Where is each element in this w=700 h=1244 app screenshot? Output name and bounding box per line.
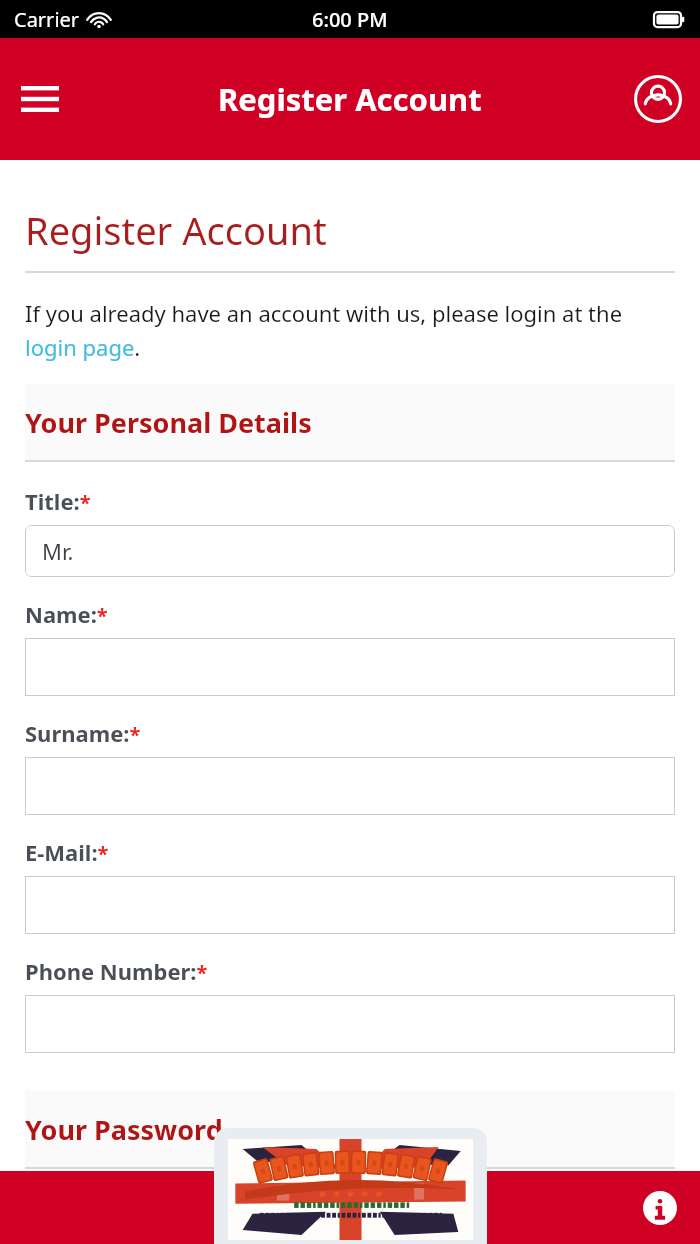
button[interactable]: Account [630,71,686,127]
staticText: Name:* [25,599,108,629]
button[interactable] [25,757,675,815]
button[interactable]: Mr. [25,525,675,577]
staticText: Register Account [218,78,482,120]
staticText: Mr. [42,536,74,566]
staticText: Title:* [25,486,91,516]
staticText: Carrier [14,6,80,33]
staticText: E-Mail:* [25,837,109,867]
button[interactable]: Menu [14,73,66,125]
button[interactable] [214,1128,487,1244]
staticText: Your Personal Details [25,404,312,441]
button[interactable] [25,995,675,1053]
button[interactable] [25,638,675,696]
button[interactable]: Information [638,1186,682,1230]
staticText: Your Password [25,1111,223,1148]
staticText: Surname:* [25,718,141,748]
staticText: 6:00 PM [312,6,388,33]
staticText: If you already have an account with us, … [25,298,675,362]
staticText: Phone Number:* [25,956,208,986]
button[interactable] [25,876,675,934]
staticText: Register Account [25,204,327,256]
